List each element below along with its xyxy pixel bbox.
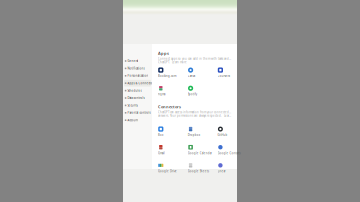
staticText: General <box>127 59 138 63</box>
button[interactable]: Coursera <box>218 67 247 78</box>
staticText: Coursera <box>218 74 230 78</box>
staticText: ChatGPT can access information from your… <box>158 110 231 114</box>
staticText: Schedules <box>127 89 141 92</box>
staticText: Google Calendar <box>188 151 212 155</box>
staticText: Personalization <box>127 74 148 77</box>
staticText: Notifications <box>127 67 144 70</box>
staticText: ChatGPT. Learn more <box>158 61 187 64</box>
staticText: Security <box>127 104 137 107</box>
button[interactable]: Notifications <box>124 65 151 72</box>
staticText: Spotify <box>188 92 197 96</box>
staticText: Apps <box>158 50 169 56</box>
button[interactable]: Apps & Connectors <box>124 80 151 87</box>
button[interactable]: Linear <box>218 163 247 173</box>
button[interactable]: Parental controls <box>124 109 151 116</box>
button[interactable]: Google Contacts <box>218 144 247 155</box>
staticText: Dropbox <box>188 133 200 137</box>
staticText: GitHub <box>218 133 228 137</box>
staticText: Gmail <box>158 151 165 155</box>
button[interactable]: Spotify <box>188 85 218 96</box>
staticText: Canva <box>188 74 195 78</box>
button[interactable]: Account <box>124 117 151 124</box>
staticText: Data controls <box>127 96 144 100</box>
staticText: Booking.com <box>158 74 176 78</box>
staticText: Box <box>158 133 163 137</box>
button[interactable]: Security <box>124 102 151 109</box>
button[interactable]: Google Drive <box>158 163 188 173</box>
staticText: Account <box>127 118 138 122</box>
staticText: Parental controls <box>127 111 150 114</box>
staticText: Google Drive <box>158 170 177 173</box>
staticText: answers. Your permissions are always res… <box>158 114 231 117</box>
button[interactable]: Personalization <box>124 72 151 79</box>
staticText: Figma <box>158 92 165 96</box>
staticText: Google Contacts <box>218 151 241 155</box>
button[interactable]: GitHub <box>218 126 247 137</box>
button[interactable]: Gmail <box>158 144 188 155</box>
button[interactable]: Figma <box>158 85 188 96</box>
button[interactable]: Booking.com <box>158 67 188 78</box>
staticText: Connect apps so you can add in them with… <box>158 57 231 60</box>
button[interactable]: Box <box>158 126 188 137</box>
staticText: Connectors <box>158 104 181 109</box>
staticText: Linear <box>218 170 226 173</box>
button[interactable]: General <box>124 58 151 64</box>
button[interactable]: Google Calendar <box>188 144 218 155</box>
button[interactable]: Dropbox <box>188 126 218 137</box>
button[interactable]: Canva <box>188 67 218 78</box>
button[interactable]: Schedules <box>124 87 151 94</box>
button[interactable]: Data controls <box>124 95 151 101</box>
button[interactable]: Google Sheets <box>188 163 218 173</box>
staticText: Apps & Connectors <box>127 81 154 85</box>
staticText: Google Sheets <box>188 170 209 173</box>
